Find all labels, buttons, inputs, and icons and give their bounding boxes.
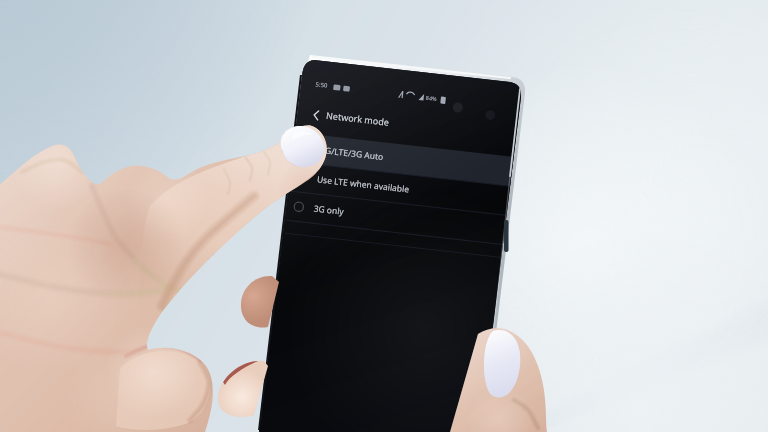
- button[interactable]: Hand tapping Network mode setting on a p…: [0, 0, 768, 432]
